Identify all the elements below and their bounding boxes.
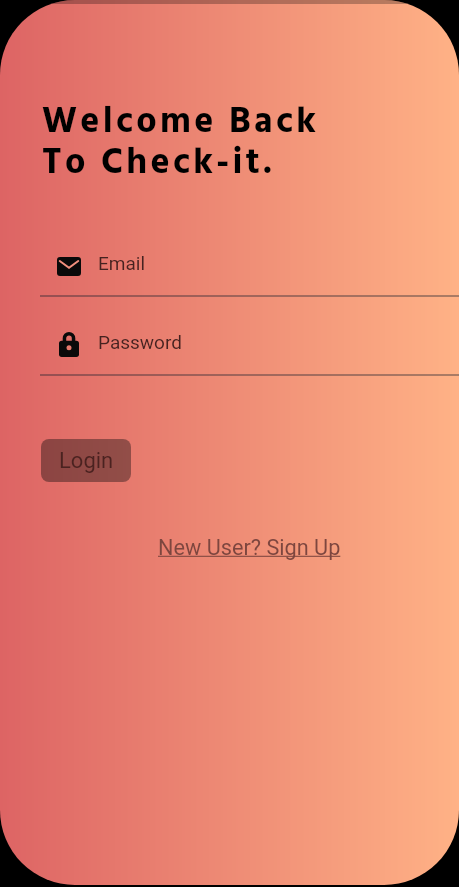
button[interactable]: New User? Sign Up (158, 535, 341, 560)
button[interactable]: Email (0, 246, 459, 297)
staticText: Welcome Back To Check-it. (42, 94, 320, 193)
other: Email (57, 257, 81, 276)
button[interactable]: Login (41, 439, 131, 482)
button[interactable]: Password (0, 325, 459, 376)
staticText: Email (98, 252, 146, 274)
staticText: New User? Sign Up (158, 535, 341, 560)
staticText: Login (59, 448, 114, 474)
staticText: Password (98, 331, 182, 353)
other: Password (59, 332, 79, 357)
